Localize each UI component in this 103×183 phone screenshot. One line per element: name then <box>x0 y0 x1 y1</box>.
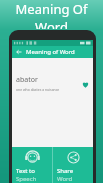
button[interactable]: abator <box>12 75 93 92</box>
staticText: one who abates a nuisance <box>16 87 60 92</box>
button[interactable]: Text to Speech <box>12 147 52 183</box>
button[interactable]: Favorite <box>80 79 90 89</box>
button[interactable]: Back <box>12 46 93 58</box>
staticText: Meaning of Word <box>26 48 75 56</box>
staticText: Text to <box>16 167 35 175</box>
staticText: abator <box>16 75 38 85</box>
staticText: Word <box>57 175 73 183</box>
staticText: Share <box>57 167 74 175</box>
staticText: Meaning Of Word <box>0 0 103 29</box>
button[interactable]: Back <box>15 48 23 56</box>
button[interactable]: Share Word <box>53 147 93 183</box>
staticText: Speech <box>16 175 37 183</box>
